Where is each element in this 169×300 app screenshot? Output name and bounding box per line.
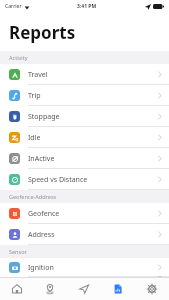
button[interactable]: InActive	[0, 148, 169, 169]
staticText: Activity	[9, 54, 28, 61]
button[interactable]: Home	[0, 278, 33, 300]
button[interactable]: Address	[0, 224, 169, 245]
button[interactable]: Ignition	[0, 258, 169, 277]
button[interactable]: Reports	[101, 278, 135, 300]
staticText: Speed vs Distance	[28, 175, 88, 185]
staticText: 3:41 PM	[77, 3, 97, 10]
staticText: Sensor	[9, 248, 27, 255]
staticText: Geofence-Address	[9, 193, 57, 200]
button[interactable]: Trip	[0, 85, 169, 106]
button[interactable]: Travel	[0, 64, 169, 85]
staticText: Idle	[28, 133, 41, 143]
staticText: Address	[28, 230, 55, 240]
staticText: InActive	[28, 154, 55, 164]
staticText: Ignition	[28, 263, 54, 273]
button[interactable]: Settings	[135, 278, 169, 300]
staticText: Geofence	[28, 209, 60, 219]
staticText: Trip	[28, 91, 41, 101]
staticText: Travel	[28, 70, 48, 80]
staticText: Reports	[9, 21, 76, 44]
button[interactable]: Speed vs Distance	[0, 169, 169, 190]
button[interactable]: Places	[33, 278, 67, 300]
button[interactable]: Track	[67, 278, 101, 300]
staticText: Stoppage	[28, 112, 60, 122]
button[interactable]: Stoppage	[0, 106, 169, 127]
button[interactable]: Idle	[0, 127, 169, 148]
button[interactable]: Geofence	[0, 203, 169, 224]
staticText: Carrier	[5, 3, 22, 10]
